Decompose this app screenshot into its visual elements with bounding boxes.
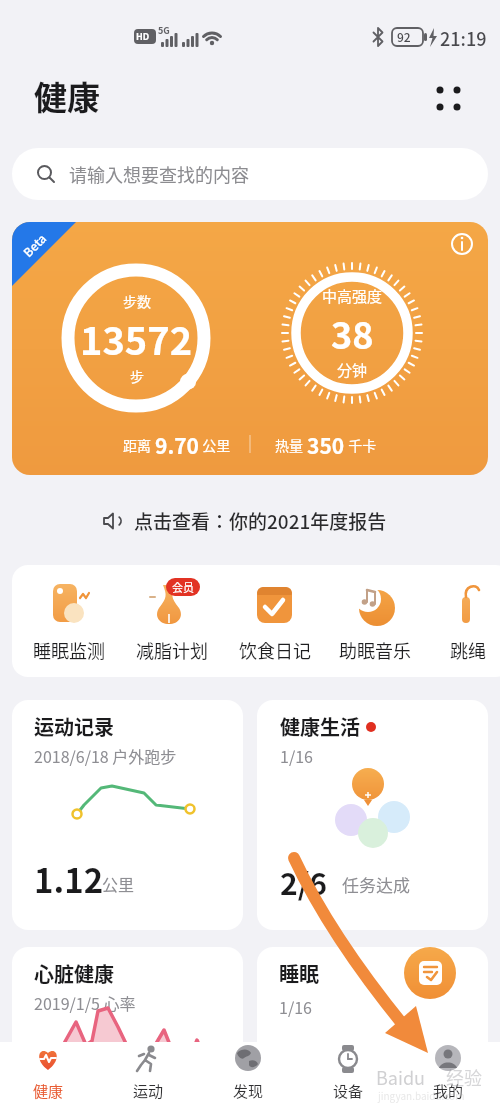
staticText: 设备 xyxy=(333,1080,364,1102)
staticText: 公里 xyxy=(102,872,135,895)
staticText: jingyan.baidu.com xyxy=(378,1088,465,1102)
button[interactable]: 发现 xyxy=(198,1042,298,1111)
staticText: 健康 xyxy=(33,1080,64,1102)
staticText: 健康 xyxy=(34,72,100,120)
staticText: HD xyxy=(136,30,150,43)
staticText: 13572 xyxy=(80,311,193,366)
staticText: 我的 xyxy=(433,1080,464,1102)
staticText: 2018/6/18 户外跑步 xyxy=(34,744,177,767)
button[interactable]: 健康 xyxy=(0,1042,98,1111)
button[interactable]: 心脏健康 xyxy=(12,947,243,1067)
staticText: 点击查看：你的2021年度报告 xyxy=(134,507,387,535)
button[interactable]: 睡眠监测 xyxy=(24,581,114,677)
staticText: 1/16 xyxy=(280,744,313,767)
button[interactable]: 运动记录 xyxy=(12,700,243,930)
staticText: 38 xyxy=(331,307,374,359)
staticText: 任务达成 xyxy=(342,872,410,897)
staticText: 步数 xyxy=(123,291,151,311)
button[interactable]: 我的 xyxy=(398,1042,498,1111)
staticText: 睡眠监测 xyxy=(33,637,105,663)
button[interactable]: Beta xyxy=(12,222,488,475)
staticText: 千卡 xyxy=(345,435,377,455)
staticText: 减脂计划 xyxy=(136,637,208,663)
staticText: 跳绳 xyxy=(450,637,486,663)
staticText: 2/6 xyxy=(280,860,328,903)
staticText: 21:19 xyxy=(440,25,487,51)
staticText: 公里 xyxy=(199,435,231,455)
button[interactable]: 健康生活 xyxy=(257,700,488,930)
staticText: 发现 xyxy=(233,1080,264,1102)
staticText: 中高强度 xyxy=(322,285,383,307)
staticText: 健康生活 xyxy=(280,712,360,741)
button[interactable]: 请输入想要查找的内容 xyxy=(12,148,488,200)
staticText: 9.70 xyxy=(155,430,199,460)
staticText: 助眠音乐 xyxy=(339,637,411,663)
staticText: 92 xyxy=(397,28,411,45)
staticText: 运动记录 xyxy=(34,712,114,741)
staticText: 睡眠 xyxy=(279,959,319,988)
staticText: 5G xyxy=(158,24,170,37)
staticText: 2019/1/5 心率 xyxy=(34,991,136,1014)
staticText: 350 xyxy=(307,430,345,460)
staticText: 热量 xyxy=(275,435,307,455)
staticText: 1.12 xyxy=(34,855,104,903)
button[interactable]: 饮食日记 xyxy=(230,581,320,677)
staticText: 会员 xyxy=(172,579,194,595)
staticText: 饮食日记 xyxy=(239,637,311,663)
button[interactable] xyxy=(430,80,470,120)
staticText: Beta xyxy=(19,229,50,260)
button[interactable]: 运动 xyxy=(98,1042,198,1111)
staticText: 分钟 xyxy=(337,359,368,381)
button[interactable]: 点击查看：你的2021年度报告 xyxy=(100,504,387,538)
staticText: 距离 xyxy=(123,435,155,455)
staticText: 心脏健康 xyxy=(34,959,114,988)
staticText: 1/16 xyxy=(279,995,312,1018)
button[interactable]: 减脂计划 xyxy=(127,581,217,677)
staticText: 运动 xyxy=(133,1080,164,1102)
staticText: 请输入想要查找的内容 xyxy=(69,161,249,187)
button[interactable]: 设备 xyxy=(298,1042,398,1111)
button[interactable]: 跳绳 xyxy=(423,581,500,677)
button[interactable]: 睡眠 xyxy=(257,947,488,1067)
button[interactable]: 助眠音乐 xyxy=(330,581,420,677)
staticText: 经验 xyxy=(446,1064,482,1090)
staticText: 步 xyxy=(130,366,144,386)
staticText: Baidu xyxy=(376,1064,425,1090)
